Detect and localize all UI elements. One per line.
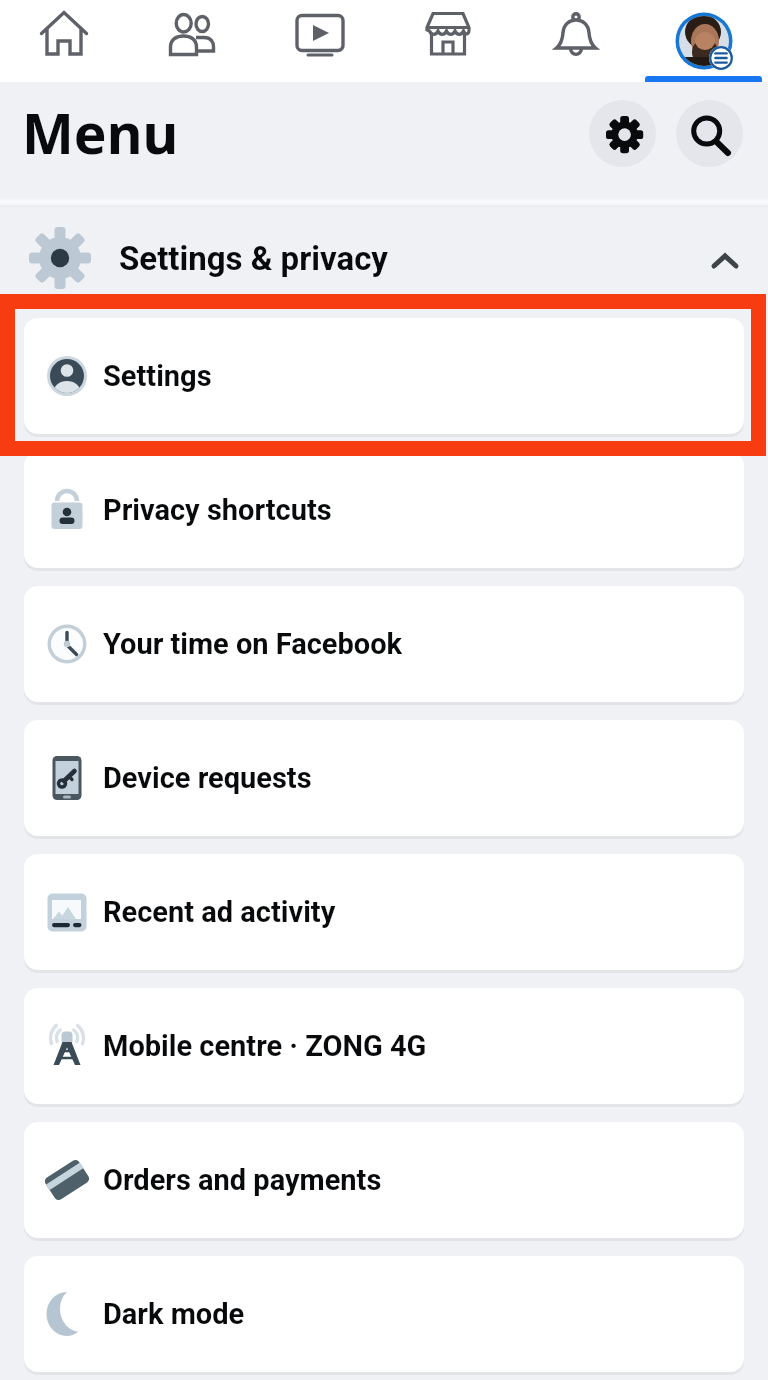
button[interactable]: Mobile centre · ZONG 4G — [24, 988, 744, 1104]
button[interactable]: Privacy shortcuts — [24, 452, 744, 568]
button[interactable]: Search — [676, 100, 743, 167]
button[interactable]: Home — [0, 0, 128, 82]
button[interactable]: Settings & privacy — [0, 205, 768, 311]
button[interactable]: Marketplace — [384, 0, 512, 82]
button[interactable]: Recent ad activity — [24, 854, 744, 970]
button[interactable]: Notifications — [512, 0, 640, 82]
button[interactable]: Your time on Facebook — [24, 586, 744, 702]
button[interactable]: Dark mode — [24, 1256, 744, 1372]
button[interactable]: Orders and payments — [24, 1122, 744, 1238]
button[interactable]: Settings — [24, 318, 744, 434]
staticText: Menu — [22, 95, 179, 170]
staticText: Mobile centre · ZONG 4G — [103, 1029, 427, 1063]
staticText: Device requests — [103, 761, 312, 795]
button[interactable]: Menu — [640, 0, 768, 82]
staticText: Settings — [103, 359, 212, 393]
staticText: Orders and payments — [103, 1163, 382, 1197]
staticText: Settings & privacy — [119, 239, 388, 278]
button[interactable]: Friends — [128, 0, 256, 82]
staticText: Dark mode — [103, 1297, 245, 1331]
staticText: Your time on Facebook — [103, 627, 403, 661]
staticText: Recent ad activity — [103, 895, 336, 929]
button[interactable]: Settings — [589, 100, 656, 167]
button[interactable]: Video — [256, 0, 384, 82]
staticText: Privacy shortcuts — [103, 493, 332, 527]
button[interactable]: Device requests — [24, 720, 744, 836]
